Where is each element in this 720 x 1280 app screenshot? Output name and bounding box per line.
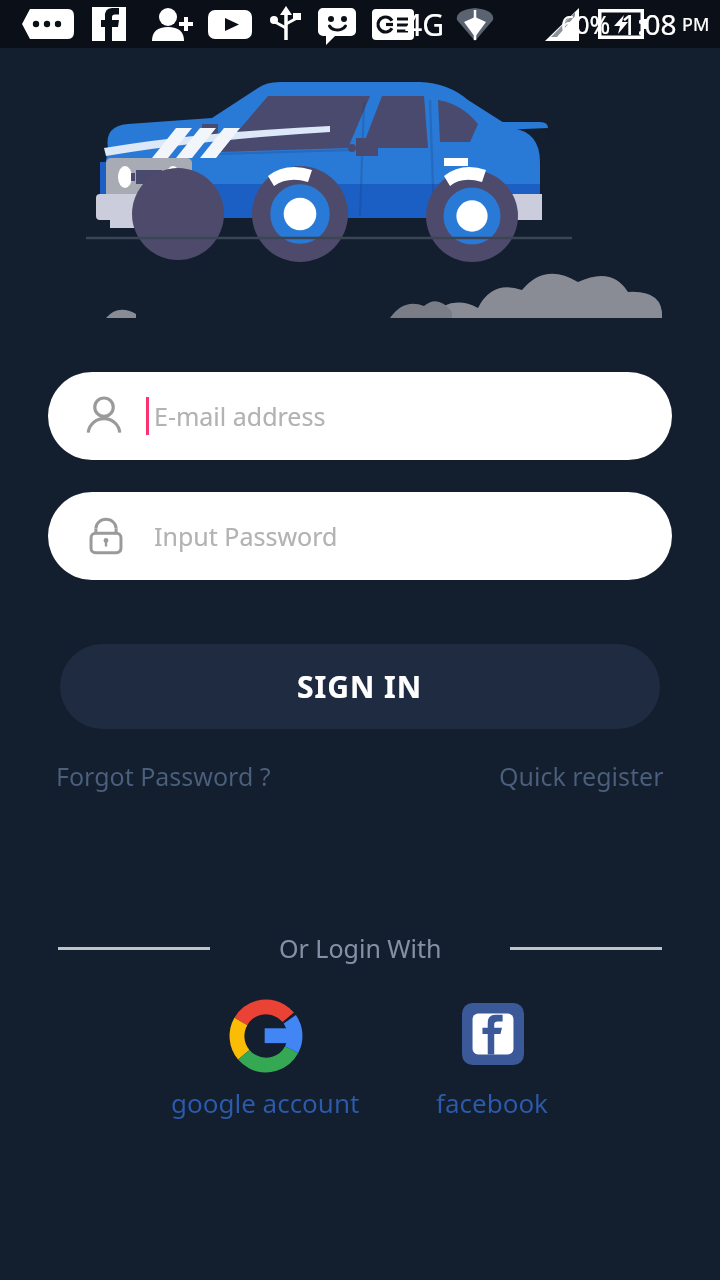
staticText: Quick register — [499, 759, 664, 793]
staticText: 60% — [561, 7, 611, 41]
staticText: facebook — [436, 1085, 549, 1120]
staticText: SIGN IN — [297, 666, 423, 707]
staticText: E-mail address — [154, 399, 326, 433]
staticText: PM — [682, 12, 710, 37]
button[interactable]: Input Password — [48, 492, 672, 580]
button[interactable]: E-mail address — [48, 372, 672, 460]
button[interactable]: Quick register — [499, 759, 664, 793]
button[interactable]: facebook — [428, 1003, 557, 1120]
staticText: Forgot Password ? — [56, 759, 271, 793]
button[interactable]: Forgot Password ? — [56, 759, 271, 793]
staticText: Or Login With — [279, 931, 442, 965]
button[interactable]: SIGN IN — [60, 644, 660, 729]
staticText: 1:08 — [621, 5, 677, 43]
staticText: 4G — [405, 4, 444, 45]
button[interactable]: google account — [163, 1003, 368, 1120]
staticText: Input Password — [154, 519, 338, 553]
staticText: google account — [171, 1085, 360, 1120]
